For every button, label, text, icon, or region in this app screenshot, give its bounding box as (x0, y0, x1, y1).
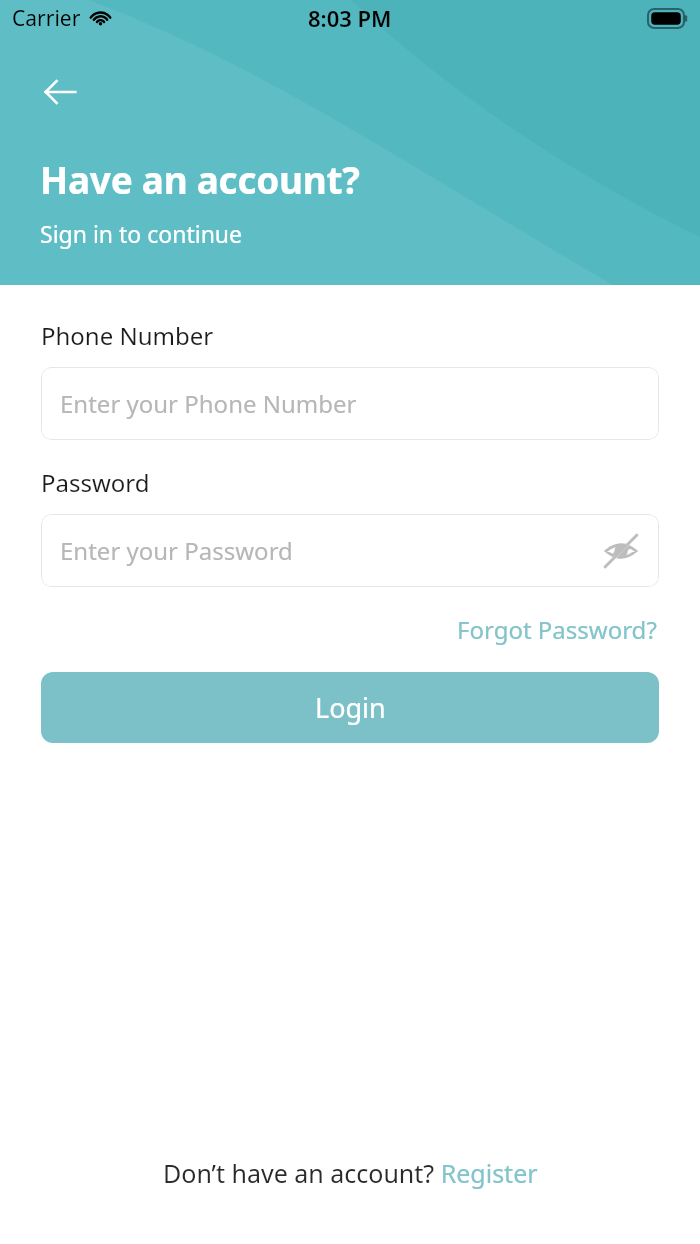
button[interactable]: Don’t have an account? Register (157, 1152, 544, 1194)
staticText: Sign in to continue (40, 218, 243, 249)
button[interactable]: Enter your Password (41, 514, 659, 587)
staticText: Login (315, 689, 386, 726)
button[interactable]: Back (26, 58, 94, 126)
staticText: Enter your Password (60, 534, 293, 567)
staticText: Enter your Phone Number (60, 387, 357, 420)
staticText: Phone Number (41, 319, 214, 352)
staticText: 8:03 PM (308, 3, 392, 33)
button[interactable]: Enter your Phone Number (41, 367, 659, 440)
button[interactable]: Login (41, 672, 659, 743)
button[interactable]: Show password (597, 527, 645, 575)
staticText: Carrier (12, 4, 81, 33)
staticText: Don’t have an account? Register (163, 1156, 538, 1190)
staticText: Password (41, 466, 150, 499)
staticText: Forgot Password? (457, 613, 657, 646)
button[interactable]: Forgot Password? (455, 609, 659, 650)
staticText: Have an account? (40, 154, 360, 204)
